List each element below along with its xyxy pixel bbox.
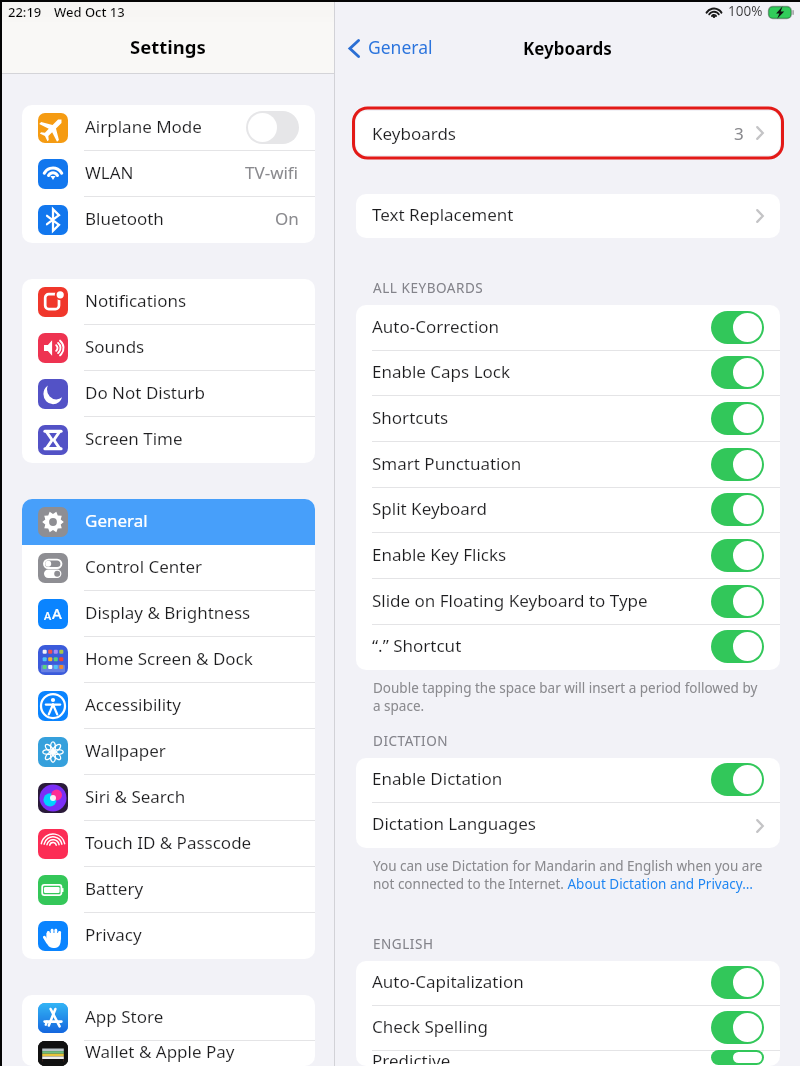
button[interactable]: Off	[246, 111, 299, 144]
button[interactable]: Control Center	[22, 545, 315, 591]
staticText: DICTATION	[373, 732, 449, 750]
button[interactable]: Screen Time	[22, 417, 315, 463]
staticText: Slide on Floating Keyboard to Type	[372, 589, 648, 612]
staticText: Airplane Mode	[85, 115, 202, 138]
staticText: Split Keyboard	[372, 497, 487, 520]
button[interactable]: Auto-Correction	[356, 305, 780, 351]
staticText: Privacy	[85, 923, 142, 946]
staticText: Notifications	[85, 289, 187, 312]
button[interactable]: On	[711, 402, 764, 435]
button[interactable]: On	[711, 763, 764, 796]
button[interactable]: On	[711, 966, 764, 999]
staticText: Control Center	[85, 555, 203, 578]
staticText: A	[44, 608, 52, 623]
button[interactable]: Sounds	[22, 325, 315, 371]
button[interactable]: On	[711, 1011, 764, 1044]
staticText: A	[52, 603, 62, 623]
button[interactable]: Privacy	[22, 913, 315, 959]
staticText: Check Spelling	[372, 1015, 488, 1038]
staticText: Sounds	[85, 335, 145, 358]
button[interactable]: Split Keyboard	[356, 488, 780, 533]
button[interactable]: Enable Dictation	[356, 758, 780, 803]
staticText: ALL KEYBOARDS	[373, 279, 484, 297]
staticText: TV-wifi	[245, 161, 299, 184]
button[interactable]: Enable Key Flicks	[356, 533, 780, 579]
staticText: Keyboards	[523, 37, 612, 60]
staticText: Battery	[85, 877, 144, 900]
staticText: Auto-Capitalization	[372, 970, 524, 993]
staticText: Dictation Languages	[372, 812, 536, 835]
button[interactable]: On	[711, 539, 764, 572]
button[interactable]: Bluetooth	[22, 197, 315, 243]
staticText: Enable Dictation	[372, 767, 503, 790]
button[interactable]: Battery	[22, 867, 315, 913]
staticText: Touch ID & Passcode	[85, 831, 252, 854]
button[interactable]: Slide on Floating Keyboard to Type	[356, 579, 780, 625]
button[interactable]: Do Not Disturb	[22, 371, 315, 417]
button[interactable]: Wallet & Apple Pay	[22, 1041, 315, 1066]
staticText: Settings	[130, 34, 206, 59]
staticText: Accessibility	[85, 693, 181, 716]
staticText: 22:19	[8, 3, 42, 21]
button[interactable]: WLAN	[22, 151, 315, 197]
button[interactable]: Touch ID & Passcode	[22, 821, 315, 867]
staticText: Predictive	[372, 1049, 451, 1064]
staticText: Smart Punctuation	[372, 452, 522, 475]
button[interactable]: Dictation Languages	[356, 803, 780, 848]
staticText: On	[275, 207, 299, 230]
button[interactable]: Back to General	[348, 36, 433, 60]
button[interactable]: Auto-Capitalization	[356, 961, 780, 1006]
staticText: Wed Oct 13	[54, 3, 125, 21]
staticText: Siri & Search	[85, 785, 186, 808]
button[interactable]: Smart Punctuation	[356, 442, 780, 488]
button[interactable]: Check Spelling	[356, 1006, 780, 1051]
staticText: You can use Dictation for Mandarin and E…	[373, 857, 782, 893]
button[interactable]: Predictive	[356, 1051, 780, 1066]
staticText: Screen Time	[85, 427, 183, 450]
button[interactable]: On	[711, 448, 764, 481]
button[interactable]: Siri & Search	[22, 775, 315, 821]
button[interactable]: Wallpaper	[22, 729, 315, 775]
button[interactable]: “.” Shortcut	[356, 625, 780, 670]
button[interactable]: General	[22, 499, 315, 545]
staticText: General	[368, 35, 433, 59]
staticText: Enable Key Flicks	[372, 543, 507, 566]
button[interactable]: Accessibility	[22, 683, 315, 729]
staticText: Shortcuts	[372, 406, 449, 429]
button[interactable]: On	[711, 311, 764, 344]
staticText: Wallet & Apple Pay	[85, 1040, 235, 1063]
staticText: 3	[734, 122, 744, 145]
button[interactable]: Home Screen & Dock	[22, 637, 315, 683]
staticText: Double tapping the space bar will insert…	[373, 679, 764, 715]
staticText: Auto-Correction	[372, 315, 500, 338]
button[interactable]: On	[711, 630, 764, 663]
staticText: Keyboards	[372, 122, 456, 145]
staticText: 100%	[728, 2, 763, 20]
staticText: ENGLISH	[373, 935, 434, 953]
staticText: “.” Shortcut	[372, 634, 462, 657]
staticText: Text Replacement	[372, 203, 514, 226]
staticText: Wallpaper	[85, 739, 166, 762]
button[interactable]: A	[22, 591, 315, 637]
button[interactable]: Text Replacement	[356, 194, 780, 238]
staticText: WLAN	[85, 161, 134, 184]
button[interactable]: Keyboards	[356, 111, 780, 155]
button[interactable]: On	[711, 1050, 764, 1065]
button[interactable]: On	[711, 356, 764, 389]
staticText: Bluetooth	[85, 207, 164, 230]
staticText: App Store	[85, 1005, 164, 1028]
button[interactable]: Enable Caps Lock	[356, 351, 780, 396]
button[interactable]: Airplane Mode	[22, 105, 315, 151]
button[interactable]: On	[711, 585, 764, 618]
button[interactable]: App Store	[22, 995, 315, 1041]
staticText: Home Screen & Dock	[85, 647, 253, 670]
staticText: General	[85, 509, 148, 532]
button[interactable]: Shortcuts	[356, 396, 780, 442]
button[interactable]: On	[711, 493, 764, 526]
staticText: Enable Caps Lock	[372, 360, 511, 383]
staticText: Do Not Disturb	[85, 381, 205, 404]
button[interactable]: Notifications	[22, 279, 315, 325]
staticText: Display & Brightness	[85, 601, 251, 624]
